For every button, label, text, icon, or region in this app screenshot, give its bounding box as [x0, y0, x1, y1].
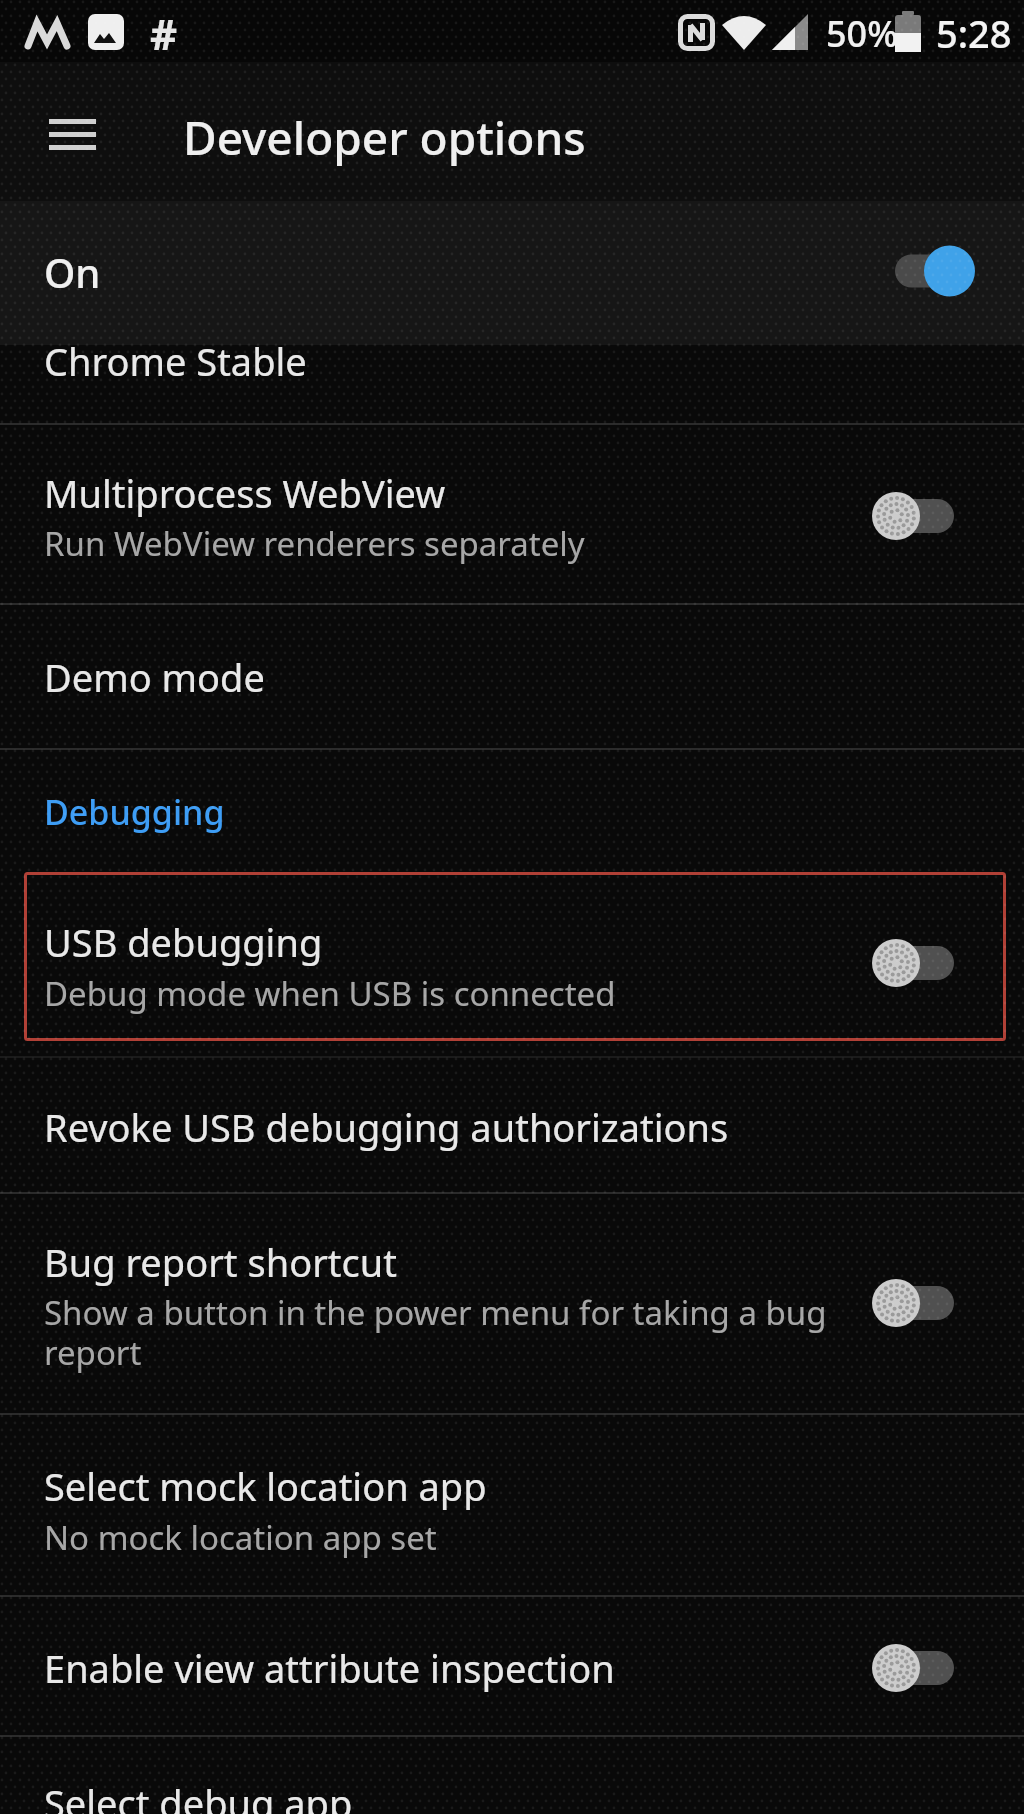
staticText: Show a button in the power menu for taki… [44, 1290, 827, 1335]
staticText: Developer options [183, 106, 586, 169]
button[interactable] [0, 1737, 1024, 1814]
staticText: Enable view attribute inspection [44, 1642, 615, 1694]
button[interactable] [0, 605, 1024, 748]
staticText: USB debugging [44, 916, 323, 968]
button[interactable] [0, 873, 1024, 1040]
staticText: Debugging [44, 789, 225, 835]
staticText: On [44, 245, 101, 299]
staticText: Multiprocess WebView [44, 467, 446, 519]
staticText: No mock location app set [44, 1515, 437, 1560]
button[interactable] [34, 110, 110, 158]
staticText: 5:28 [936, 7, 1012, 59]
button[interactable] [0, 1415, 1024, 1595]
button[interactable] [0, 345, 1024, 423]
staticText: Revoke USB debugging authorizations [44, 1101, 729, 1153]
staticText: Bug report shortcut [44, 1236, 397, 1288]
staticText: 50% [826, 9, 898, 58]
staticText: Select mock location app [44, 1460, 487, 1512]
staticText: Chrome Stable [44, 335, 307, 387]
staticText: Select debug app [44, 1777, 353, 1814]
staticText: Demo mode [44, 651, 265, 703]
staticText: report [44, 1330, 142, 1375]
staticText: Run WebView renderers separately [44, 521, 585, 566]
staticText: # [150, 5, 178, 62]
button[interactable] [0, 201, 1024, 345]
staticText: Debug mode when USB is connected [44, 971, 616, 1016]
button[interactable] [0, 1058, 1024, 1192]
button[interactable] [0, 1194, 1024, 1413]
button[interactable] [0, 1597, 1024, 1735]
button[interactable] [0, 425, 1024, 603]
